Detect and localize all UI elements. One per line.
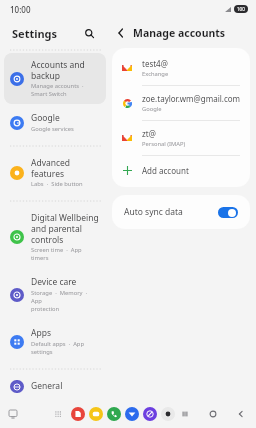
button[interactable]: zt@ [112,121,250,155]
staticText: Screen time · App timers [31,246,100,262]
staticText: Google services [31,125,74,133]
staticText: Manage accounts [133,26,226,40]
staticText: Personal (IMAP) [142,140,186,148]
staticText: Exchange [142,70,169,78]
button[interactable]: Digital Wellbeing and parental controls [4,206,106,268]
staticText: Add account [142,165,189,176]
button[interactable]: General management [4,374,106,399]
button[interactable]: Recent apps [178,407,192,421]
button[interactable]: Internet [143,407,157,421]
staticText: zt@ [142,128,156,139]
button[interactable]: Files [89,407,103,421]
staticText: General management [31,380,85,393]
staticText: zoe.taylor.wm@gmail.com [142,93,241,104]
button[interactable]: Messages [125,407,139,421]
staticText: test4@ [142,58,168,69]
button[interactable]: Device care [4,270,106,319]
staticText: Device care [31,276,77,288]
staticText: Accounts and backup [31,59,85,81]
staticText: 100 [237,6,245,12]
button[interactable]: Apps [4,321,106,362]
button[interactable]: Add account [112,156,250,184]
button[interactable]: zoe.taylor.wm@gmail.com [112,86,250,120]
button[interactable]: Auto sync data [112,195,250,229]
staticText: Default apps · App settings [31,340,85,356]
staticText: Labs · Side button [31,180,83,188]
button[interactable]: Search settings [80,24,98,42]
button[interactable]: Office [71,407,85,421]
staticText: Digital Wellbeing and parental controls [31,212,99,245]
button[interactable]: Advanced features [4,151,106,194]
staticText: Settings [12,26,58,41]
staticText: Google [31,112,60,124]
staticText: Google [142,105,162,113]
button[interactable]: Camera [161,407,175,421]
staticText: Storage · Memory · App protection [31,289,100,313]
button[interactable]: Back [112,24,130,42]
button[interactable]: test4@ [112,51,250,85]
button[interactable]: Back [234,407,248,421]
button[interactable]: Google [4,106,106,139]
staticText: Apps [31,327,51,339]
button[interactable]: Taskbar [6,407,20,421]
button[interactable]: Home [206,407,220,421]
staticText: 10:00 [10,4,31,15]
button[interactable]: Phone [107,407,121,421]
staticText: Auto sync data [124,206,183,218]
button[interactable]: Apps [51,407,65,421]
button[interactable]: Accounts and backup [4,53,106,104]
staticText: Advanced features [31,157,71,179]
staticText: Manage accounts · Smart Switch [31,82,84,98]
